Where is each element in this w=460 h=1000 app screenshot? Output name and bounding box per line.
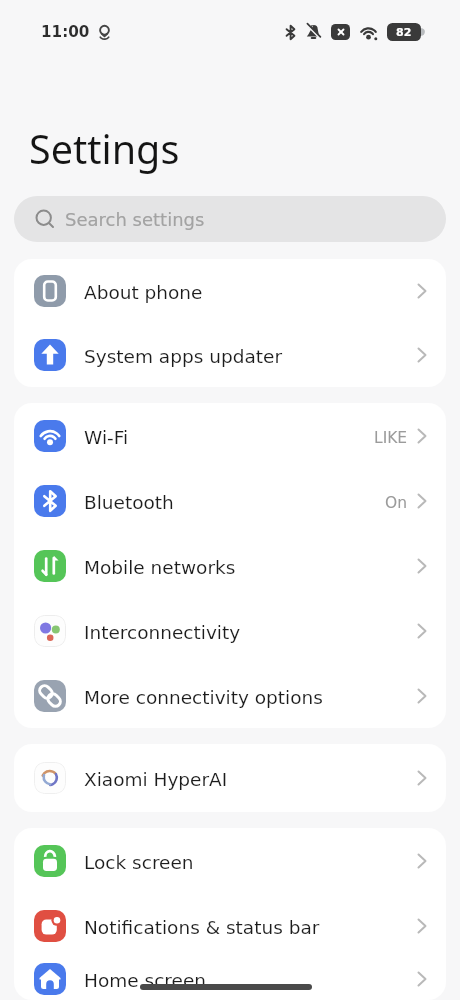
button[interactable]: More connectivity options bbox=[14, 663, 446, 728]
staticText: Notifications & status bar bbox=[84, 917, 320, 939]
staticText: Interconnectivity bbox=[84, 622, 241, 644]
staticText: About phone bbox=[84, 282, 203, 304]
staticText: Search settings bbox=[65, 209, 205, 230]
staticText: System apps updater bbox=[84, 346, 282, 368]
button[interactable]: Interconnectivity bbox=[14, 598, 446, 663]
staticText: 82 bbox=[396, 26, 412, 39]
button[interactable]: Search settings bbox=[14, 196, 446, 242]
staticText: Mobile networks bbox=[84, 557, 236, 579]
button[interactable]: Lock screen bbox=[14, 828, 446, 893]
staticText: Home screen bbox=[84, 970, 207, 992]
button[interactable]: Bluetooth bbox=[14, 468, 446, 533]
staticText: Settings bbox=[29, 122, 180, 176]
staticText: Lock screen bbox=[84, 852, 194, 874]
button[interactable]: Home screen bbox=[14, 958, 446, 1000]
staticText: More connectivity options bbox=[84, 687, 323, 709]
button[interactable]: Notifications & status bar bbox=[14, 893, 446, 958]
staticText: On bbox=[385, 494, 408, 512]
staticText: Xiaomi HyperAI bbox=[84, 769, 228, 791]
button[interactable]: Xiaomi HyperAI bbox=[14, 744, 446, 812]
button[interactable]: Wi-Fi bbox=[14, 403, 446, 468]
button[interactable]: System apps updater bbox=[14, 323, 446, 387]
staticText: LIKE bbox=[374, 429, 408, 447]
staticText: 11:00 bbox=[41, 23, 90, 41]
button[interactable]: About phone bbox=[14, 259, 446, 323]
button[interactable]: Mobile networks bbox=[14, 533, 446, 598]
staticText: Bluetooth bbox=[84, 492, 174, 514]
staticText: Wi-Fi bbox=[84, 427, 129, 449]
